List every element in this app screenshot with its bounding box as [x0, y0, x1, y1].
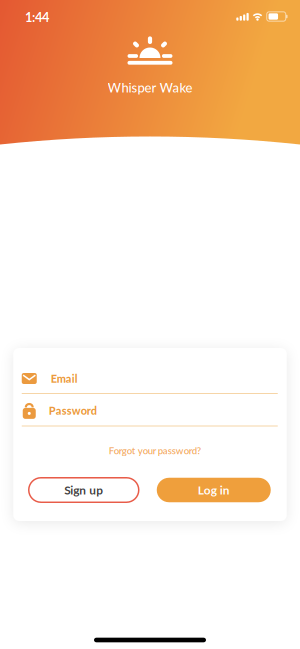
- button[interactable]: Sign up: [29, 478, 139, 502]
- staticText: 1:44: [25, 9, 49, 25]
- button[interactable]: Log in: [157, 478, 271, 502]
- button[interactable]: Email: [13, 372, 287, 385]
- staticText: Sign up: [64, 483, 103, 497]
- staticText: Forgot your password?: [109, 445, 201, 456]
- staticText: Whisper Wake: [107, 80, 192, 95]
- staticText: Email: [51, 372, 78, 385]
- staticText: Password: [49, 404, 97, 417]
- staticText: Log in: [198, 483, 230, 497]
- button[interactable]: Password: [13, 402, 287, 419]
- button[interactable]: Forgot your password?: [109, 445, 201, 456]
